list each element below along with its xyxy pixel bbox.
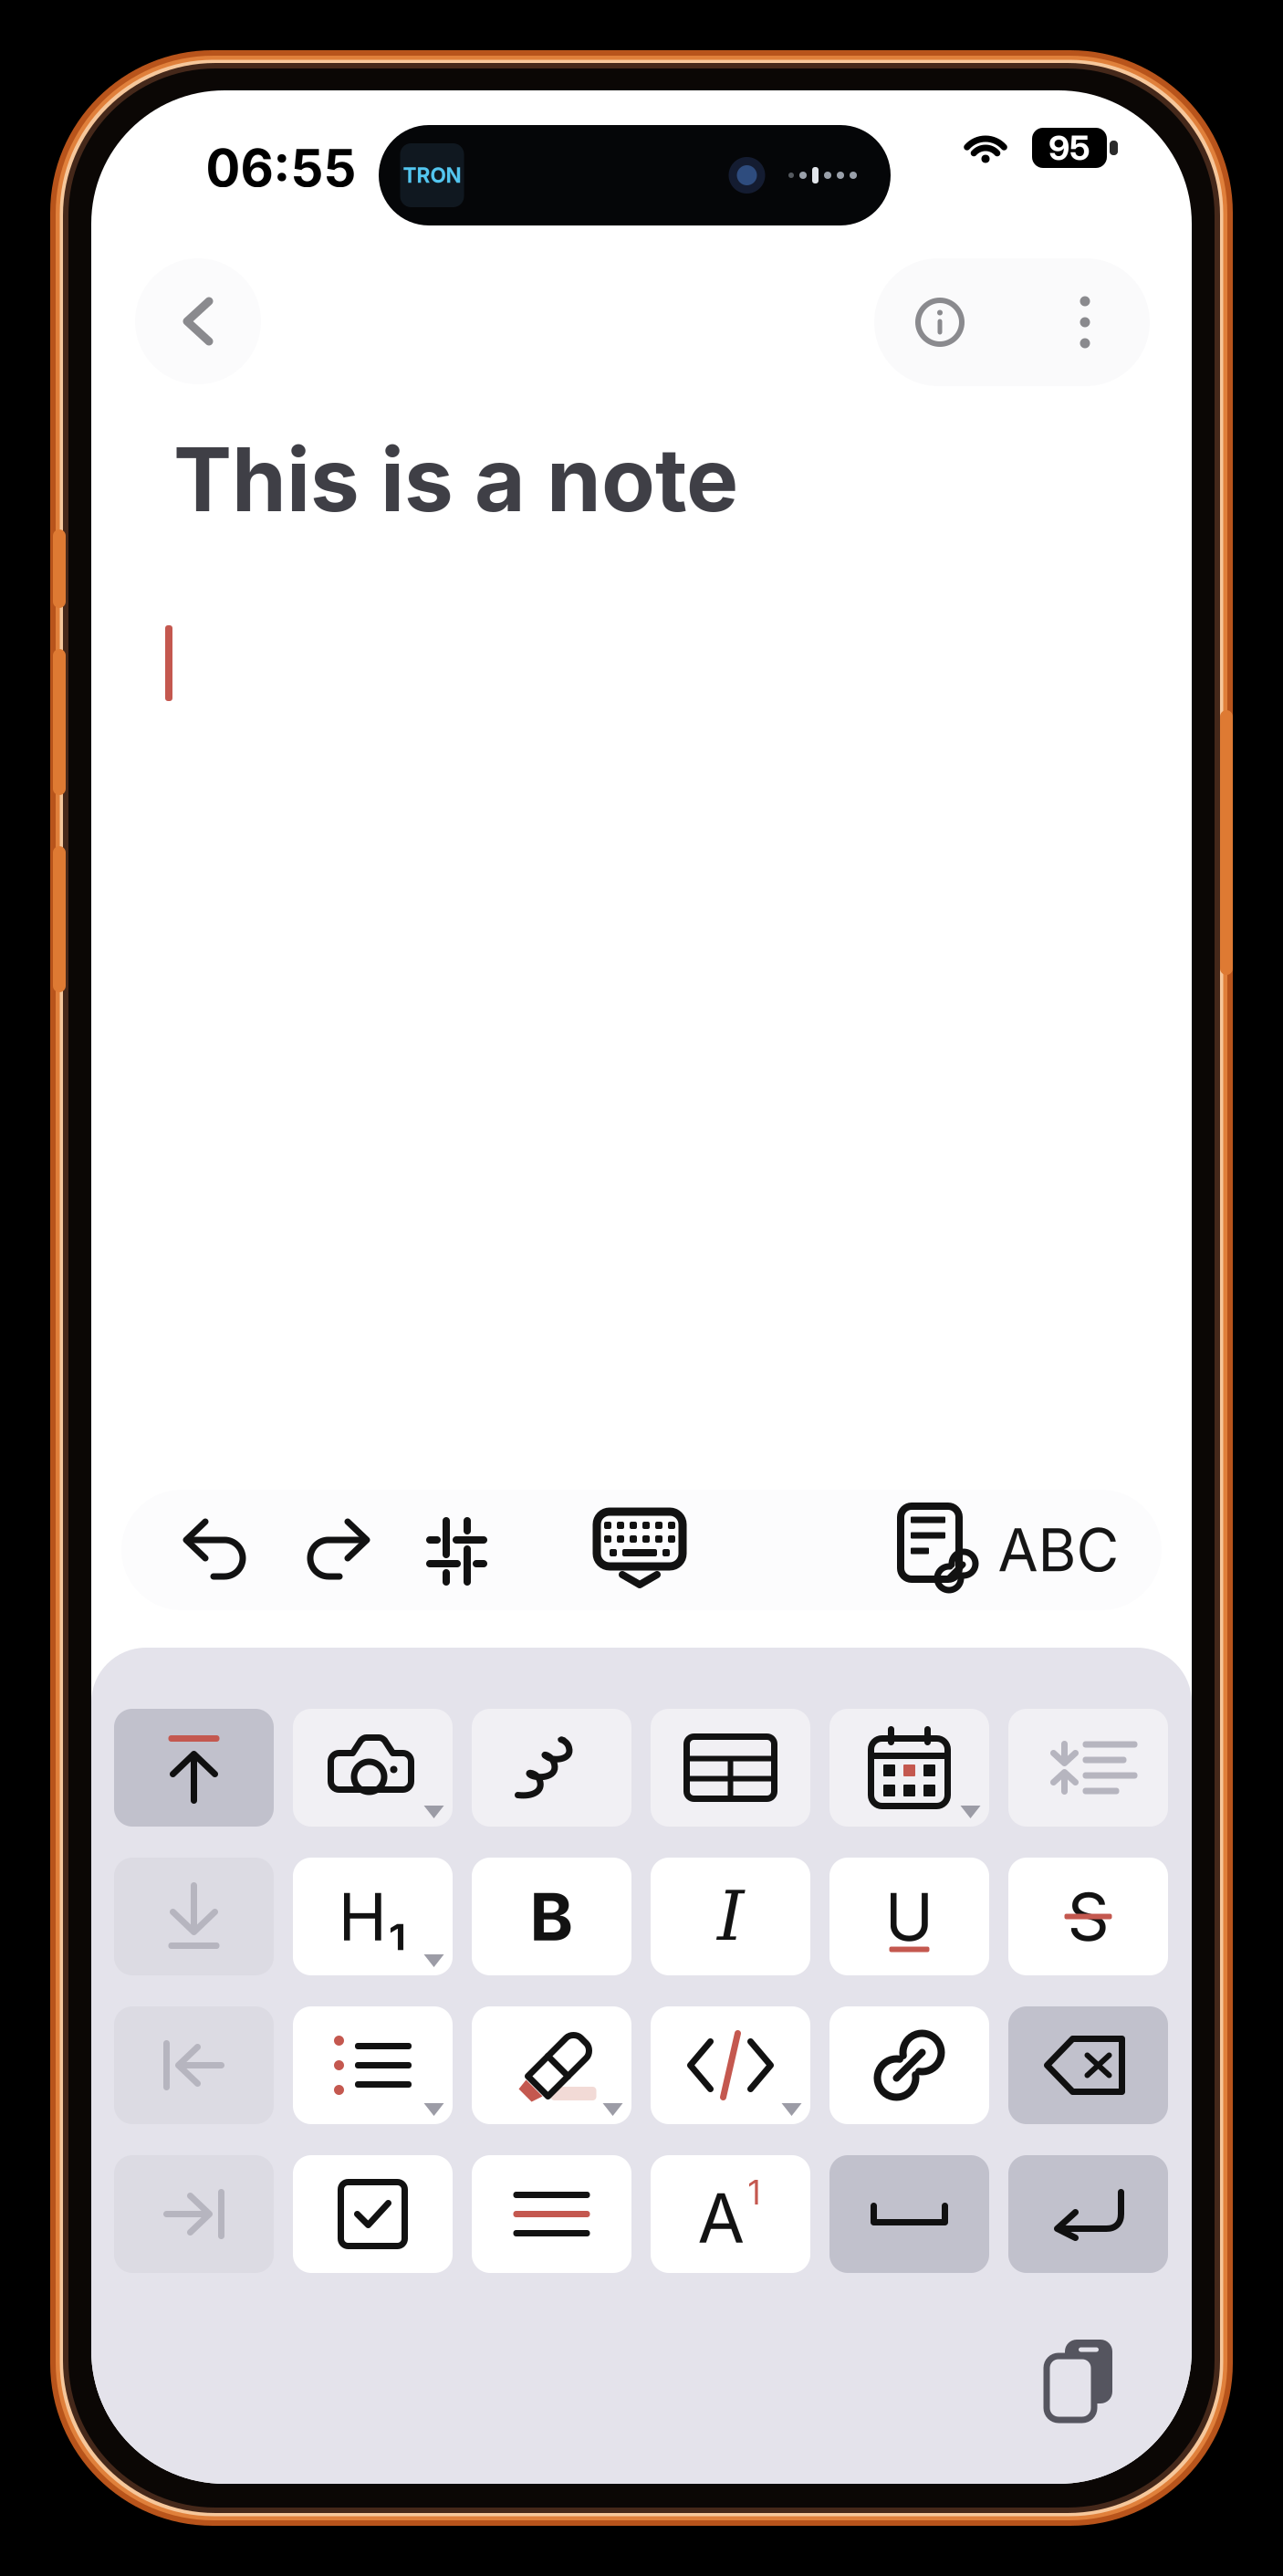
staticText: 1 bbox=[748, 2172, 761, 2213]
button[interactable]: Delete bbox=[1008, 2006, 1168, 2124]
staticText: A bbox=[698, 2176, 745, 2259]
button[interactable]: Italic bbox=[651, 1858, 810, 1975]
button[interactable]: Move to bottom bbox=[114, 1858, 274, 1975]
button[interactable]: Space bbox=[829, 2155, 989, 2273]
staticText: ABC bbox=[998, 1515, 1119, 1585]
staticText: U bbox=[885, 1877, 934, 1956]
staticText: I bbox=[717, 1877, 744, 1956]
button[interactable]: Back bbox=[135, 258, 261, 384]
button[interactable]: Undo bbox=[166, 1490, 268, 1610]
button[interactable]: Bold bbox=[472, 1858, 631, 1975]
button[interactable]: Underline bbox=[829, 1858, 989, 1975]
staticText: 06:55 bbox=[206, 137, 356, 199]
staticText: H₁ bbox=[338, 1877, 407, 1956]
button[interactable]: Text style bbox=[651, 2155, 810, 2273]
button[interactable]: Bulleted list bbox=[293, 2006, 453, 2124]
button[interactable]: Note information bbox=[885, 258, 995, 386]
button[interactable]: Hide keyboard bbox=[589, 1490, 691, 1610]
button[interactable]: Return bbox=[1008, 2155, 1168, 2273]
button[interactable]: Link bbox=[829, 2006, 989, 2124]
button[interactable]: Attach document bbox=[888, 1490, 990, 1610]
button[interactable]: Strikethrough bbox=[1008, 1858, 1168, 1975]
button[interactable]: Switch keyboard bbox=[1043, 2334, 1116, 2425]
button[interactable]: Date bbox=[829, 1709, 989, 1827]
button[interactable]: Align bbox=[472, 2155, 631, 2273]
staticText: TRON bbox=[403, 163, 461, 188]
button[interactable]: Code bbox=[651, 2006, 810, 2124]
button[interactable]: Checklist bbox=[293, 2155, 453, 2273]
button[interactable]: Move to top bbox=[114, 1709, 274, 1827]
staticText: This is a note bbox=[173, 426, 738, 532]
button[interactable]: Outdent bbox=[114, 2006, 274, 2124]
button[interactable]: Collapse bbox=[1008, 1709, 1168, 1827]
button[interactable]: Camera bbox=[293, 1709, 453, 1827]
button[interactable]: ABC bbox=[976, 1490, 1141, 1610]
button[interactable]: Indent bbox=[114, 2155, 274, 2273]
button[interactable]: Heading 1 bbox=[293, 1858, 453, 1975]
button[interactable]: Highlight bbox=[472, 2006, 631, 2124]
staticText: 95 bbox=[1048, 127, 1090, 169]
staticText: B bbox=[530, 1877, 574, 1956]
button[interactable]: Formatting options bbox=[405, 1490, 507, 1610]
button[interactable]: Table bbox=[651, 1709, 810, 1827]
button[interactable]: More options bbox=[1035, 258, 1135, 386]
staticText: S bbox=[1067, 1877, 1109, 1956]
button[interactable]: Draw bbox=[472, 1709, 631, 1827]
button[interactable]: Redo bbox=[285, 1490, 387, 1610]
